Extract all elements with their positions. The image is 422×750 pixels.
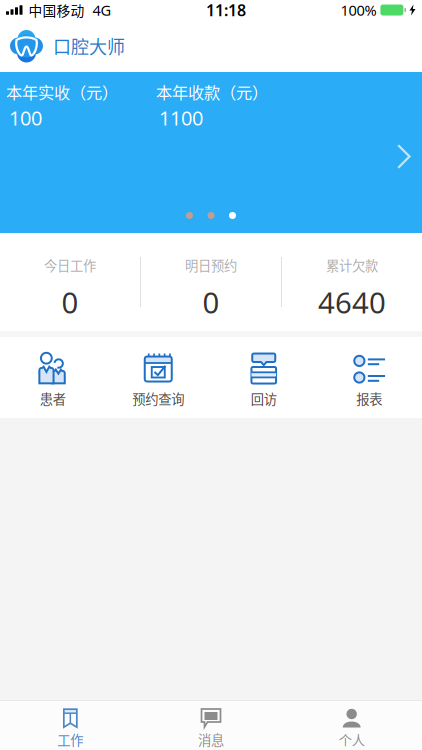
staticText: 0 bbox=[61, 283, 78, 322]
staticText: 本年实收（元） bbox=[6, 80, 118, 104]
staticText: 回访 bbox=[251, 389, 277, 408]
staticText: 明日预约 bbox=[185, 255, 237, 275]
staticText: 4640 bbox=[318, 283, 386, 322]
button[interactable]: 个人 bbox=[281, 701, 422, 750]
staticText: 患者 bbox=[40, 389, 66, 408]
staticText: 预约查询 bbox=[132, 389, 184, 408]
button[interactable]: 本年实收（元） bbox=[0, 72, 422, 233]
staticText: 中国移动 bbox=[28, 0, 84, 20]
button[interactable]: 工作 bbox=[0, 701, 141, 750]
staticText: 个人 bbox=[339, 730, 365, 749]
button[interactable]: 今日工作 bbox=[0, 233, 140, 331]
staticText: 累计欠款 bbox=[326, 255, 378, 275]
staticText: 100 bbox=[9, 105, 42, 131]
button[interactable]: 报表 bbox=[316, 337, 422, 418]
staticText: 0 bbox=[202, 283, 219, 322]
staticText: 1100 bbox=[159, 105, 203, 131]
button[interactable]: 消息 bbox=[141, 701, 281, 750]
staticText: 4G bbox=[92, 0, 111, 20]
button[interactable]: 回访 bbox=[211, 337, 316, 418]
staticText: 口腔大师 bbox=[53, 33, 125, 59]
staticText: 本年收款（元） bbox=[156, 80, 268, 104]
staticText: 消息 bbox=[198, 730, 224, 749]
button[interactable]: 累计欠款 bbox=[282, 233, 422, 331]
button[interactable]: 预约查询 bbox=[105, 337, 211, 418]
staticText: 工作 bbox=[57, 730, 83, 749]
button[interactable]: 明日预约 bbox=[141, 233, 281, 331]
button[interactable]: 患者 bbox=[0, 337, 105, 418]
staticText: 11:18 bbox=[206, 0, 246, 21]
staticText: 今日工作 bbox=[44, 255, 96, 275]
staticText: 100% bbox=[340, 0, 376, 20]
staticText: 报表 bbox=[356, 389, 382, 408]
